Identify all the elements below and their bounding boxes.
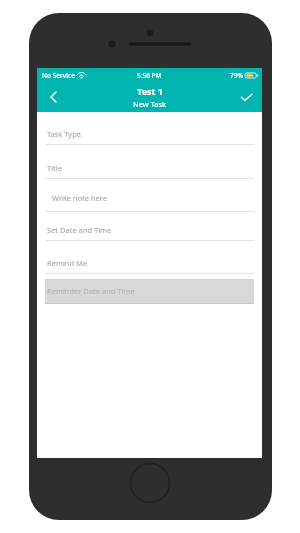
button[interactable]: Title <box>45 158 254 179</box>
button[interactable]: Set Date and Time <box>45 220 254 241</box>
button[interactable]: Save task <box>230 82 262 112</box>
staticText: Title <box>47 163 62 173</box>
button[interactable]: Write note here <box>45 185 254 212</box>
button[interactable]: Task Type <box>45 124 254 145</box>
staticText: Reminder Date and Time <box>47 286 135 296</box>
staticText: Set Date and Time <box>47 225 112 235</box>
staticText: Remind Me <box>47 258 88 268</box>
button[interactable]: Remind Me <box>45 253 254 274</box>
staticText: No Service <box>42 71 75 80</box>
staticText: Task Type <box>47 129 82 139</box>
button[interactable]: Reminder Date and Time <box>45 279 254 304</box>
staticText: New Task <box>133 99 166 109</box>
staticText: Test 1 <box>137 85 163 97</box>
staticText: Write note here <box>52 193 107 203</box>
staticText: 5:56 PM <box>137 71 162 80</box>
staticText: 79% <box>230 71 243 80</box>
button[interactable]: Back <box>37 82 69 112</box>
